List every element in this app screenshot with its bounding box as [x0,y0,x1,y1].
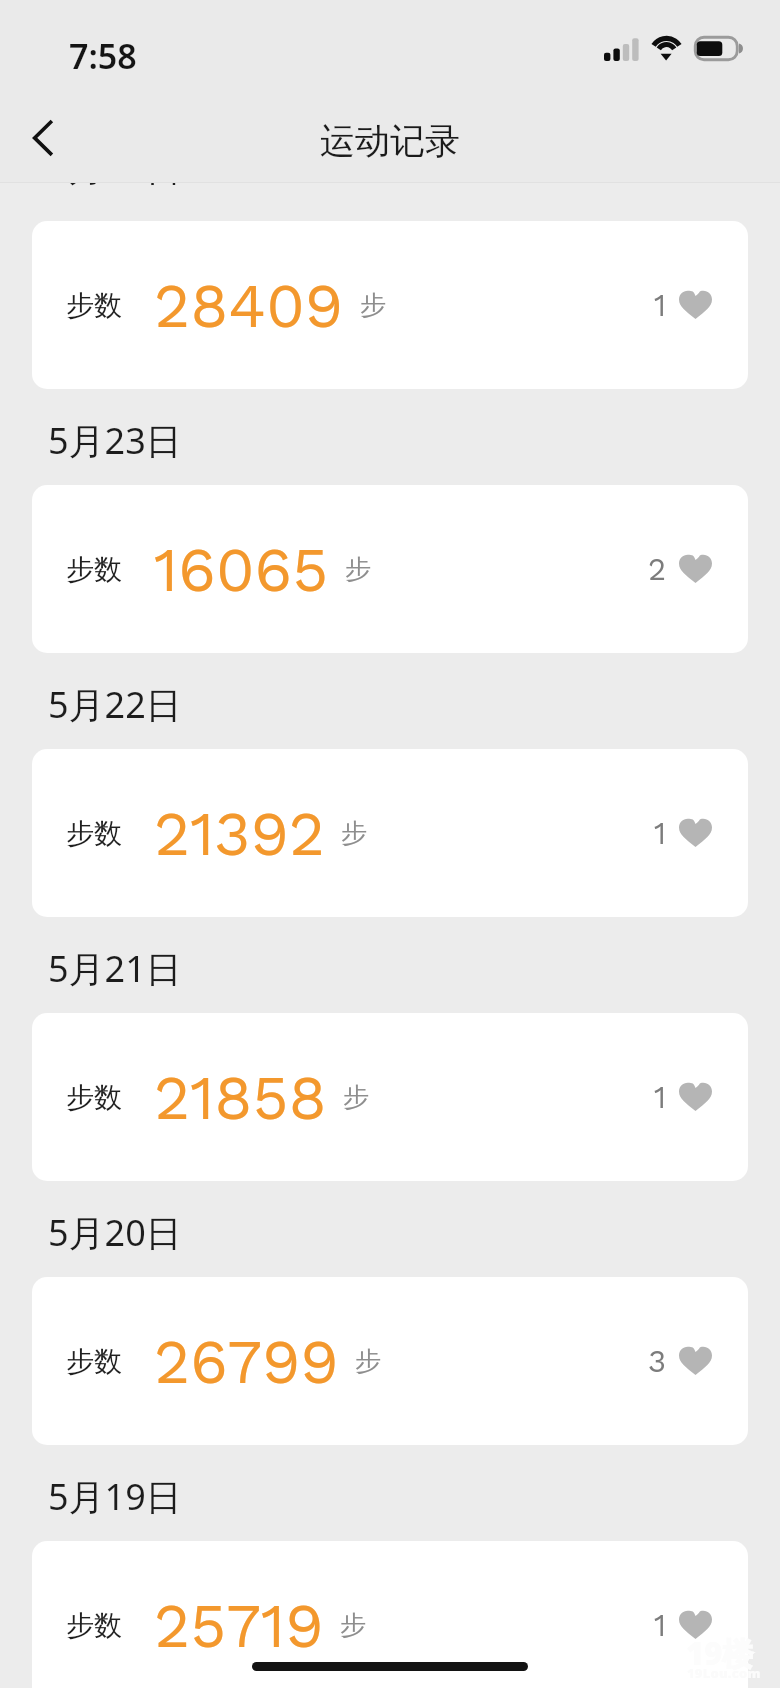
staticText: 28409 [154,269,344,342]
staticText: 步 [343,1081,369,1114]
staticText: 3 [648,1343,667,1379]
staticText: 运动记录 [0,119,780,163]
staticText: 2 [648,551,667,587]
staticText: 21858 [154,1061,327,1134]
staticText: 21392 [154,797,325,870]
staticText: 5月23日 [48,416,780,465]
staticText: 1 [654,815,667,851]
button[interactable]: Back [8,104,78,174]
staticText: 7:58 [69,33,137,79]
staticText: 步 [340,1609,366,1642]
staticText: 步 [345,553,371,586]
staticText: 步数 [66,288,122,323]
staticText: 5月19日 [48,1472,780,1521]
staticText: 19楼 [686,1632,754,1674]
staticText: 1 [654,287,667,323]
staticText: 1 [654,1079,667,1115]
staticText: 步数 [66,1080,122,1115]
staticText: 步数 [66,1344,122,1379]
staticText: 25719 [154,1589,324,1662]
button[interactable]: 步数 [32,1013,748,1181]
button[interactable]: 步数 [32,485,748,653]
staticText: 19Lou.com [687,1664,761,1682]
button[interactable]: 步数 [32,1541,748,1688]
staticText: 步 [355,1345,381,1378]
staticText: 步 [360,289,386,322]
staticText: 步数 [66,816,122,851]
staticText: 步 [341,817,367,850]
button[interactable]: 步数 [32,221,748,389]
staticText: 1 [654,1607,667,1643]
button[interactable]: 步数 [32,1277,748,1445]
staticText: 5月20日 [48,1208,780,1257]
button[interactable]: 步数 [32,749,748,917]
staticText: 5月22日 [48,680,780,729]
staticText: 16065 [154,533,329,606]
staticText: 5月21日 [48,944,780,993]
staticText: 5月24日 [48,143,780,192]
staticText: 26799 [154,1325,339,1398]
staticText: 步数 [66,1608,122,1643]
staticText: 步数 [66,552,122,587]
